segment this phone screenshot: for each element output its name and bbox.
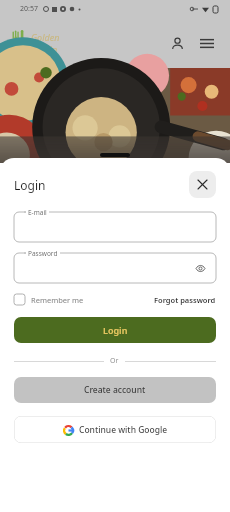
staticText: 20:57 xyxy=(20,4,38,14)
button[interactable]: Show password xyxy=(193,261,207,275)
button[interactable]: Forgot password xyxy=(154,295,216,305)
staticText: Golden xyxy=(31,31,60,43)
button[interactable]: Menu xyxy=(196,32,218,54)
staticText: Login xyxy=(14,177,46,193)
button[interactable]: Close xyxy=(189,171,216,198)
staticText: Continue with Google xyxy=(79,424,168,436)
staticText: E-mail xyxy=(28,208,47,217)
button[interactable]: Account xyxy=(166,32,188,54)
button[interactable]: E-mail xyxy=(14,212,216,242)
button[interactable]: Password xyxy=(14,253,216,283)
staticText: Remember me xyxy=(31,295,84,305)
staticText: Grain xyxy=(35,43,58,55)
staticText: Create account xyxy=(84,384,146,396)
button[interactable]: Remember me xyxy=(14,294,84,305)
staticText: Forgot password xyxy=(154,295,216,305)
button[interactable]: Login xyxy=(14,317,216,343)
staticText: Login xyxy=(103,324,128,336)
staticText: Password xyxy=(28,249,58,258)
staticText: Or xyxy=(110,356,119,366)
button[interactable]: Continue with Google xyxy=(14,416,216,443)
button[interactable]: Create account xyxy=(14,377,216,403)
